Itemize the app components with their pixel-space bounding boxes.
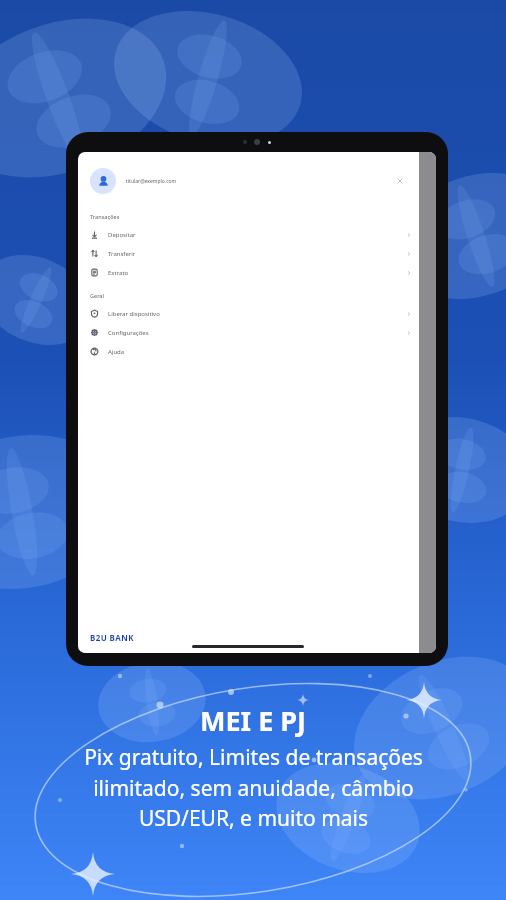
button[interactable]: Extrato	[78, 263, 436, 282]
staticText: Transações	[90, 213, 120, 220]
button[interactable]: Depositar	[78, 225, 436, 244]
button[interactable]: Ajuda	[78, 342, 436, 361]
staticText: Transferir	[108, 250, 136, 258]
button[interactable]: Fechar	[396, 177, 404, 185]
staticText: Configurações	[108, 329, 149, 337]
staticText: Extrato	[108, 269, 129, 277]
staticText: Pix gratuito, Limites de transações ilim…	[84, 743, 423, 832]
button[interactable]: Transferir	[78, 244, 436, 263]
staticText: Liberar dispositivo	[108, 310, 160, 318]
staticText: Ajuda	[108, 348, 125, 356]
staticText: MEI E PJ	[200, 702, 306, 739]
staticText: Depositar	[108, 231, 136, 239]
staticText: B2U BANK	[90, 632, 134, 643]
button[interactable]: Liberar dispositivo	[78, 304, 436, 323]
button[interactable]: titular@exemplo.com	[78, 162, 436, 200]
staticText: titular@exemplo.com	[126, 178, 177, 185]
staticText: Geral	[90, 292, 105, 299]
button[interactable]: Configurações	[78, 323, 436, 342]
